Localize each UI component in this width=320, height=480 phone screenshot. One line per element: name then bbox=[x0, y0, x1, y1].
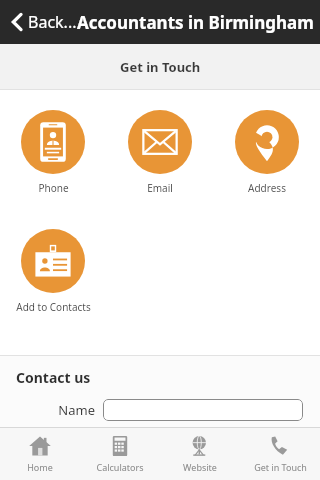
staticText: Back... bbox=[28, 11, 77, 33]
button[interactable]: Phone bbox=[0, 108, 106, 197]
staticText: Name bbox=[0, 401, 95, 419]
button[interactable]: Website bbox=[160, 428, 240, 480]
staticText: Calculators bbox=[96, 461, 144, 473]
staticText: Email bbox=[147, 181, 173, 195]
staticText: Home bbox=[27, 461, 53, 473]
button[interactable]: Calculators bbox=[80, 428, 160, 480]
staticText: Get in Touch bbox=[254, 461, 307, 473]
button[interactable]: Address bbox=[213, 108, 320, 197]
staticText: Contact us bbox=[16, 368, 91, 387]
button[interactable]: Back... bbox=[10, 7, 79, 37]
button[interactable]: Get in Touch bbox=[240, 428, 320, 480]
button[interactable]: Add to Contacts bbox=[0, 227, 106, 316]
button[interactable] bbox=[103, 399, 303, 421]
staticText: Get in Touch bbox=[120, 58, 201, 76]
staticText: Add to Contacts bbox=[16, 300, 91, 314]
staticText: Accountants in Birmingham bbox=[77, 11, 314, 34]
staticText: Website bbox=[183, 461, 217, 473]
button[interactable]: Email bbox=[106, 108, 213, 197]
staticText: Address bbox=[248, 181, 286, 195]
staticText: Phone bbox=[38, 181, 69, 195]
button[interactable]: Home bbox=[0, 428, 80, 480]
